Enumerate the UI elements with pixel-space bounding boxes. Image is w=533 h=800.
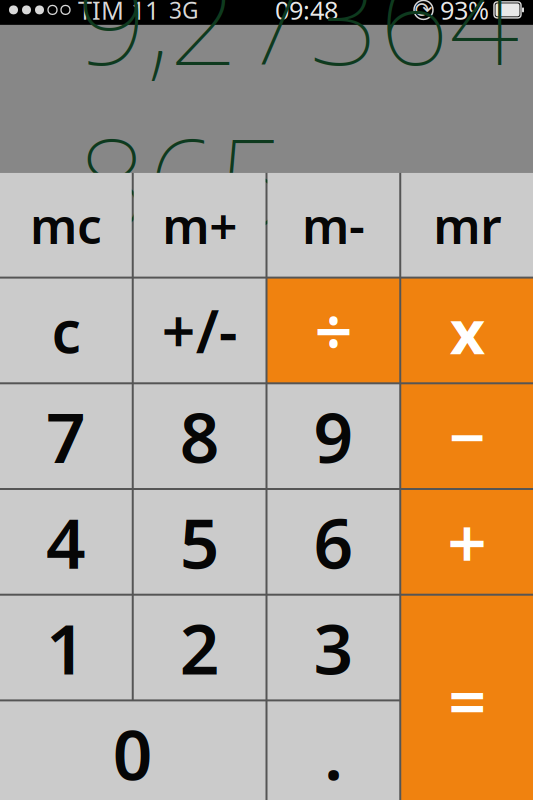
staticText: 9,27364865 bbox=[77, 0, 519, 262]
staticText: ÷ bbox=[314, 286, 352, 375]
staticText: . bbox=[324, 707, 343, 799]
button[interactable]: x bbox=[401, 279, 533, 382]
button[interactable]: − bbox=[401, 384, 533, 488]
staticText: 9 bbox=[313, 390, 353, 482]
button[interactable]: + bbox=[401, 490, 533, 594]
staticText: +/- bbox=[162, 291, 238, 369]
staticText: 8 bbox=[180, 390, 220, 482]
staticText: 93% bbox=[440, 0, 489, 27]
button[interactable]: 6 bbox=[267, 490, 399, 594]
button[interactable]: 5 bbox=[134, 490, 266, 594]
button[interactable]: ÷ bbox=[267, 279, 399, 382]
staticText: m+ bbox=[162, 192, 237, 257]
staticText: TIM 11 bbox=[78, 0, 159, 27]
staticText: ⟳ bbox=[414, 0, 432, 22]
staticText: m- bbox=[302, 192, 365, 257]
button[interactable]: 4 bbox=[0, 490, 132, 594]
button[interactable]: 2 bbox=[134, 596, 266, 699]
button[interactable]: 0 bbox=[0, 701, 265, 800]
staticText: mc bbox=[30, 192, 102, 257]
staticText: 3G bbox=[169, 0, 199, 25]
staticText: + bbox=[447, 496, 487, 588]
button[interactable]: +/- bbox=[134, 279, 266, 382]
staticText: 5 bbox=[180, 496, 220, 588]
button[interactable]: 1 bbox=[0, 596, 132, 699]
staticText: 6 bbox=[313, 496, 353, 588]
button[interactable]: 8 bbox=[134, 384, 266, 488]
staticText: = bbox=[448, 656, 486, 745]
button[interactable]: c bbox=[0, 279, 132, 382]
staticText: 0 bbox=[113, 707, 153, 799]
staticText: c bbox=[51, 291, 80, 369]
button[interactable]: 7 bbox=[0, 384, 132, 488]
staticText: mr bbox=[433, 192, 501, 257]
staticText: 7 bbox=[46, 390, 86, 482]
button[interactable]: mc bbox=[0, 173, 132, 277]
staticText: 2 bbox=[180, 601, 220, 694]
button[interactable]: 9 bbox=[267, 384, 399, 488]
staticText: x bbox=[450, 290, 485, 371]
button[interactable]: mr bbox=[401, 173, 533, 277]
button[interactable]: m+ bbox=[134, 173, 266, 277]
staticText: 1 bbox=[46, 601, 86, 694]
staticText: 3 bbox=[313, 601, 353, 694]
button[interactable]: m- bbox=[267, 173, 399, 277]
staticText: 09:48 bbox=[275, 0, 338, 27]
staticText: 4 bbox=[46, 496, 86, 588]
button[interactable]: = bbox=[401, 596, 533, 800]
button[interactable]: . bbox=[267, 701, 399, 800]
button[interactable]: 3 bbox=[267, 596, 399, 699]
staticText: − bbox=[449, 394, 486, 479]
